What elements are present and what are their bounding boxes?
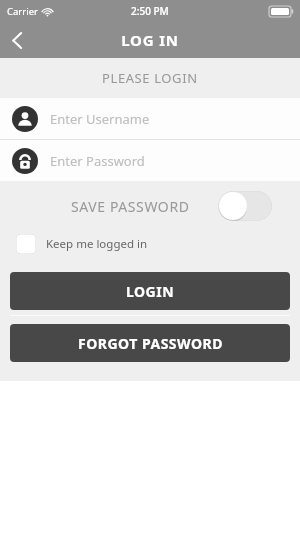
button[interactable]: Back — [0, 23, 34, 57]
staticText: PLEASE LOGIN — [102, 69, 198, 87]
staticText: Enter Password — [50, 152, 145, 170]
button[interactable]: Keep me logged in — [0, 230, 300, 258]
button[interactable]: Enter Username — [0, 98, 300, 139]
staticText: SAVE PASSWORD — [71, 197, 190, 216]
button[interactable]: Enter Password — [0, 140, 300, 181]
staticText: 2:50 PM — [131, 4, 169, 18]
staticText: Enter Username — [50, 110, 150, 128]
staticText: LOG IN — [121, 30, 179, 50]
staticText: FORGOT PASSWORD — [78, 334, 223, 353]
button[interactable]: LOGIN — [10, 272, 290, 310]
button[interactable]: FORGOT PASSWORD — [10, 324, 290, 362]
button[interactable]: Save password toggle — [218, 191, 272, 221]
staticText: Keep me logged in — [46, 236, 148, 252]
staticText: LOGIN — [126, 282, 175, 301]
staticText: Carrier — [7, 5, 38, 18]
